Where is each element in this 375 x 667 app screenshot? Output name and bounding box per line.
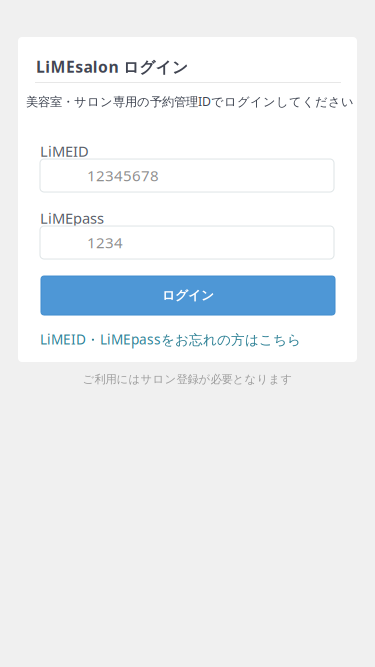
- staticText: 12345678: [87, 165, 159, 186]
- staticText: LiMEID・LiMEpassをお忘れの方はこちら: [40, 330, 301, 349]
- staticText: ログイン: [162, 287, 214, 303]
- staticText: ご利用にはサロン登録が必要となります: [82, 372, 292, 386]
- staticText: LiMEID: [40, 141, 89, 161]
- button[interactable]: LiMEID・LiMEpassをお忘れの方はこちら: [40, 330, 301, 349]
- staticText: LiMEsalon ログイン: [36, 56, 188, 77]
- staticText: LiMEpass: [40, 208, 104, 228]
- staticText: 美容室・サロン専用の予約管理IDでログインしてください: [26, 93, 354, 110]
- staticText: 1234: [87, 232, 123, 253]
- button[interactable]: ログイン: [41, 276, 335, 315]
